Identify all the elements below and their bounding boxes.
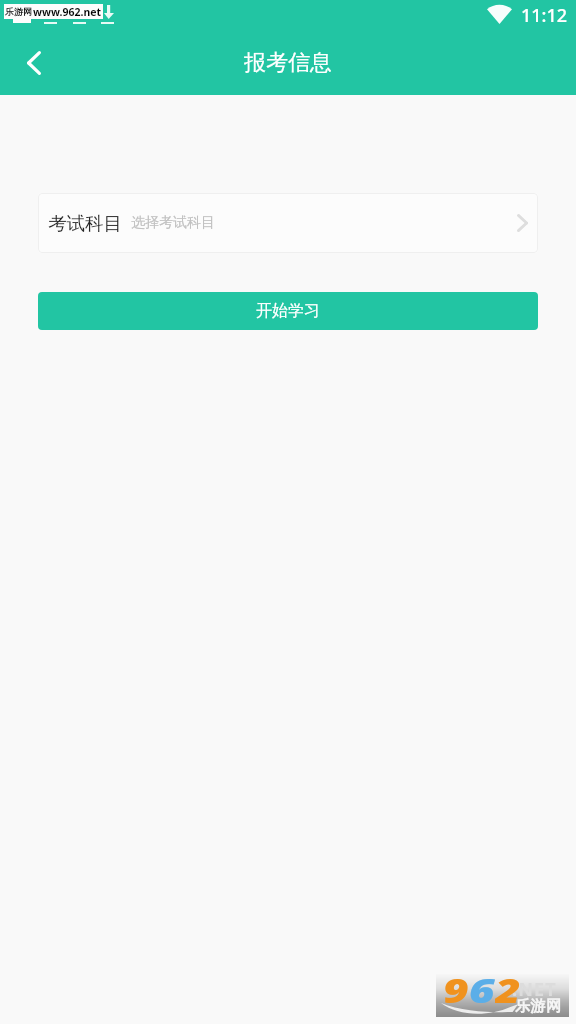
other: Download [104,5,114,19]
staticText: .NET [512,977,557,1002]
staticText: 报考信息 [244,49,332,77]
staticText: 选择考试科目 [131,214,215,232]
staticText: 乐游网 [515,997,562,1016]
button[interactable]: Back [13,42,55,84]
button[interactable]: 考试科目 [38,193,538,253]
staticText: 9 [443,967,469,1010]
staticText: 11:12 [521,3,568,28]
staticText: www.962.net [33,5,102,19]
button[interactable]: 开始学习 [38,292,538,330]
staticText: 考试科目 [48,212,122,235]
staticText: 6 [469,967,495,1010]
staticText: 开始学习 [256,301,320,321]
staticText: 2 [495,967,521,1010]
staticText: 乐游网 [5,6,32,17]
